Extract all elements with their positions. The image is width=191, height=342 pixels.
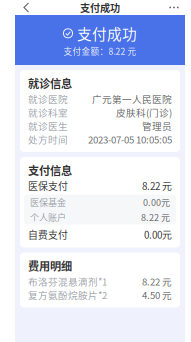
- staticText: 支付信息: [28, 162, 72, 178]
- staticText: 8.22 元: [141, 210, 170, 223]
- staticText: 就诊医院: [28, 92, 68, 106]
- staticText: 支付成功: [80, 0, 120, 15]
- staticText: 就诊医生: [28, 119, 68, 133]
- staticText: 管理员: [142, 119, 172, 133]
- staticText: 复方氨酚烷胺片*2: [28, 288, 107, 302]
- staticText: 医保基金: [30, 195, 66, 208]
- staticText: 广元第一人民医院: [92, 92, 172, 106]
- staticText: 就诊科室: [28, 105, 68, 119]
- staticText: 处方时间: [28, 132, 68, 146]
- staticText: 布洛芬混悬滴剂*1: [28, 274, 107, 288]
- staticText: 2023-07-05 10:05:05: [88, 132, 172, 146]
- staticText: 费用明细: [28, 257, 72, 274]
- staticText: 医保支付: [28, 179, 68, 193]
- staticText: 自费支付: [28, 227, 68, 242]
- staticText: 8.22 元: [142, 274, 172, 288]
- staticText: 0.00元: [143, 195, 170, 208]
- staticText: 支付成功: [77, 23, 137, 44]
- staticText: 8.22 元: [142, 179, 172, 193]
- staticText: 个人账户: [30, 210, 66, 223]
- staticText: 支付金额：8.22 元: [63, 45, 136, 57]
- staticText: 皮肤科(门诊): [116, 105, 172, 119]
- button[interactable]: 返回: [15, 0, 37, 14]
- staticText: 就诊信息: [28, 75, 72, 91]
- staticText: 4.50 元: [142, 288, 172, 302]
- button[interactable]: 更多: [163, 0, 185, 14]
- staticText: 0.00元: [144, 227, 172, 242]
